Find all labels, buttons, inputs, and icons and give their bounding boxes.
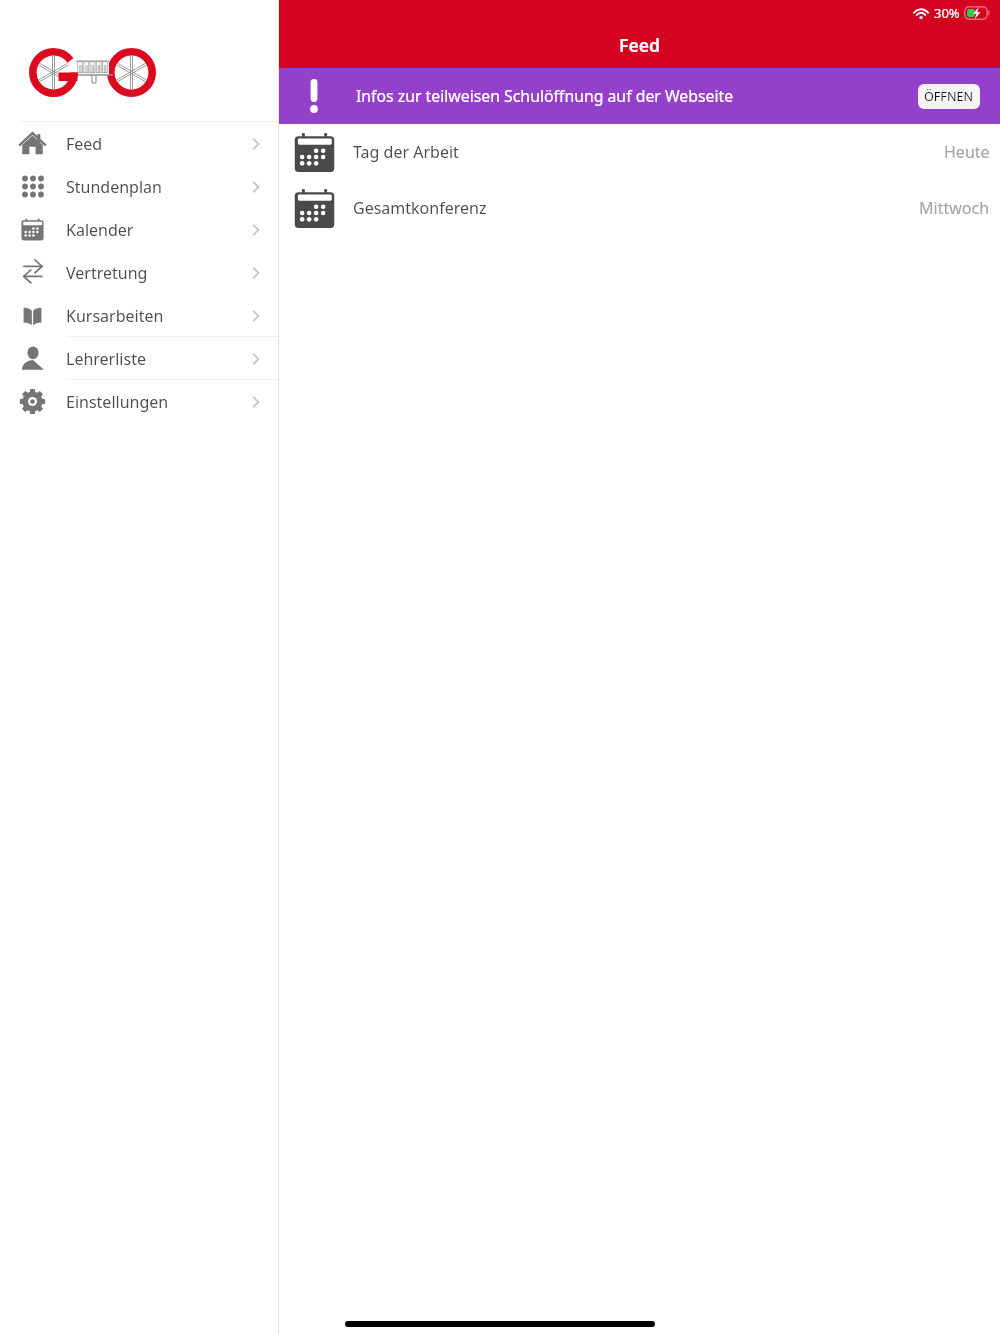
other: Gymnasium Mainz Logo [30, 48, 155, 97]
button[interactable]: Warnung [279, 68, 1000, 124]
button[interactable]: Gesamtkonferenz [279, 180, 1000, 236]
staticText: Kursarbeiten [66, 305, 164, 327]
button[interactable]: Feed [0, 122, 279, 165]
button[interactable]: Tag der Arbeit [279, 124, 1000, 180]
staticText: Gesamtkonferenz [353, 197, 487, 219]
button[interactable]: Stundenplan [0, 165, 279, 208]
staticText: Infos zur teilweisen Schulöffnung auf de… [356, 85, 734, 107]
other: Warnung [309, 79, 319, 113]
staticText: Feed [66, 133, 103, 155]
staticText: 30% [934, 4, 960, 22]
button[interactable]: ÖFFNEN [918, 84, 980, 109]
staticText: Kalender [66, 219, 134, 241]
staticText: Einstellungen [66, 391, 169, 413]
staticText: Feed [619, 33, 660, 57]
button[interactable]: Vertretung [0, 251, 279, 294]
staticText: Tag der Arbeit [353, 141, 459, 163]
staticText: Vertretung [66, 262, 148, 284]
button[interactable]: Kursarbeiten [0, 294, 279, 337]
button[interactable]: Lehrerliste [0, 337, 279, 380]
staticText: Stundenplan [66, 176, 162, 198]
staticText: ÖFFNEN [924, 88, 974, 105]
staticText: Lehrerliste [66, 348, 146, 370]
staticText: Heute [944, 141, 990, 163]
staticText: Mittwoch [919, 197, 990, 219]
button[interactable]: Kalender [0, 208, 279, 251]
button[interactable]: Einstellungen [0, 380, 279, 423]
